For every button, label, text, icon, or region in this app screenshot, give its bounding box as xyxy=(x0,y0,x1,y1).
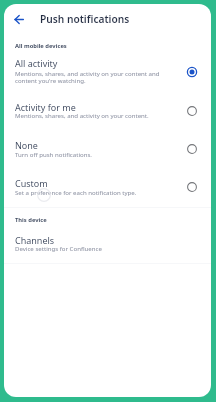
button[interactable]: Activity for me xyxy=(4,92,211,130)
staticText: All mobile devices xyxy=(15,42,67,50)
staticText: Custom xyxy=(15,177,48,189)
staticText: Push notifications xyxy=(40,12,130,26)
button[interactable]: Back xyxy=(11,11,31,31)
staticText: Device settings for Confluence xyxy=(15,244,102,252)
staticText: Set a preference for each notification t… xyxy=(15,188,164,196)
button[interactable]: Custom xyxy=(4,168,211,206)
staticText: Activity for me xyxy=(15,101,76,113)
staticText: All activity xyxy=(15,57,58,69)
staticText: Mentions, shares, and activity on your c… xyxy=(15,111,164,119)
staticText: Channels xyxy=(15,234,55,246)
staticText: Mentions, shares, and activity on your c… xyxy=(15,69,164,85)
button[interactable]: All activity xyxy=(4,51,211,92)
staticText: This device xyxy=(15,216,47,224)
staticText: Turn off push notifications. xyxy=(15,150,164,158)
button[interactable]: Channels xyxy=(4,229,211,261)
button[interactable]: None xyxy=(4,130,211,168)
staticText: None xyxy=(15,139,38,151)
